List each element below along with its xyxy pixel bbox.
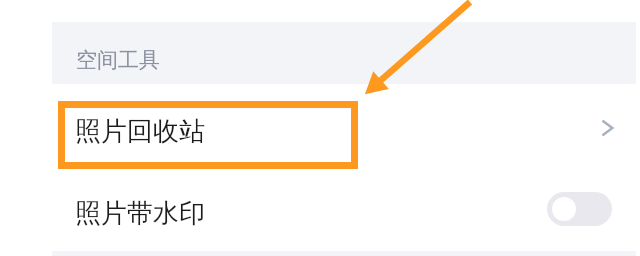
staticText: 空间工具 <box>76 47 160 73</box>
button[interactable]: 照片带水印 <box>52 169 636 251</box>
button[interactable]: 照片回收站 <box>52 84 636 169</box>
other: Highlight callout <box>58 101 358 169</box>
staticText: 照片带水印 <box>75 197 205 230</box>
staticText: 照片回收站 <box>75 115 205 148</box>
button[interactable]: Open 照片回收站 <box>597 115 619 141</box>
other: Annotation arrow <box>0 0 640 256</box>
button[interactable]: 照片带水印 switch, off <box>547 192 612 226</box>
